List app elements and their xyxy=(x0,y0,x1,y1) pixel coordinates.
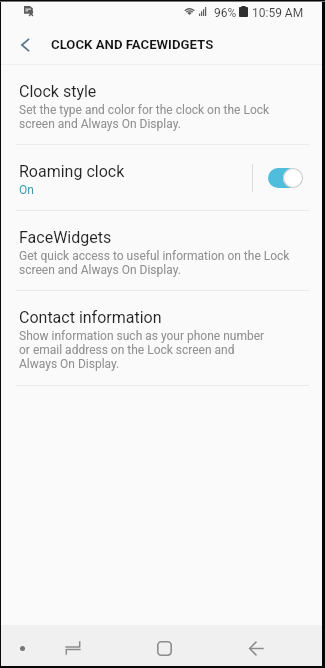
button[interactable]: Roaming clock, on xyxy=(268,168,303,188)
button[interactable]: Roaming clock xyxy=(0,145,325,210)
staticText: Get quick access to useful information o… xyxy=(19,249,290,277)
staticText: CLOCK AND FACEWIDGETS xyxy=(51,37,214,52)
staticText: Show information such as your phone numb… xyxy=(19,329,265,371)
button[interactable]: FaceWidgets xyxy=(0,211,325,290)
staticText: Clock style xyxy=(19,82,97,101)
button[interactable]: Home xyxy=(147,631,181,665)
button[interactable]: Contact information xyxy=(0,291,325,385)
button[interactable]: Clock style xyxy=(0,65,325,144)
staticText: 10:59 AM xyxy=(252,6,304,20)
other: No SIM card xyxy=(24,6,33,16)
staticText: FaceWidgets xyxy=(19,228,112,247)
staticText: 96% xyxy=(214,6,237,20)
button[interactable]: Navigate up xyxy=(6,26,44,64)
button[interactable]: Back xyxy=(239,631,273,665)
button[interactable]: Recent apps xyxy=(56,631,90,665)
staticText: Roaming clock xyxy=(19,162,125,181)
staticText: Contact information xyxy=(19,308,162,327)
staticText: On xyxy=(19,183,34,197)
staticText: Set the type and color for the clock on … xyxy=(19,103,270,131)
button[interactable]: Show or hide navigation bar xyxy=(5,631,39,665)
